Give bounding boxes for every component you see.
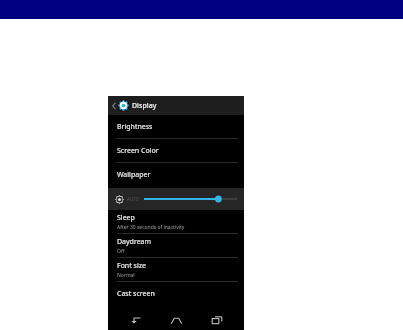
staticText: AUTO (127, 196, 140, 202)
staticText: Cast screen (117, 289, 155, 299)
button[interactable]: Up (108, 96, 244, 115)
button[interactable]: Font size (108, 258, 244, 281)
button[interactable]: Home (163, 311, 189, 329)
staticText: Font size (117, 261, 146, 271)
button[interactable]: Screen Color (108, 139, 244, 162)
button[interactable]: Cast screen (108, 282, 244, 305)
staticText: Daydream (117, 237, 152, 247)
staticText: Normal (117, 272, 135, 279)
other: Up (111, 101, 117, 111)
button[interactable]: Brightness (108, 115, 244, 138)
staticText: After 30 seconds of inactivity (117, 224, 185, 231)
staticText: Brightness (117, 122, 153, 132)
button[interactable]: Wallpaper (108, 163, 244, 186)
staticText: Screen Color (117, 146, 159, 156)
staticText: Off (117, 248, 125, 255)
staticText: Sleep (117, 213, 135, 223)
staticText: Wallpaper (117, 170, 151, 180)
button[interactable]: Brightness slider (108, 188, 244, 210)
button[interactable]: Daydream (108, 234, 244, 257)
button[interactable]: Sleep (108, 210, 244, 233)
button[interactable]: Back (123, 311, 149, 329)
staticText: Display (132, 101, 157, 111)
button[interactable]: Recent apps (204, 311, 230, 329)
